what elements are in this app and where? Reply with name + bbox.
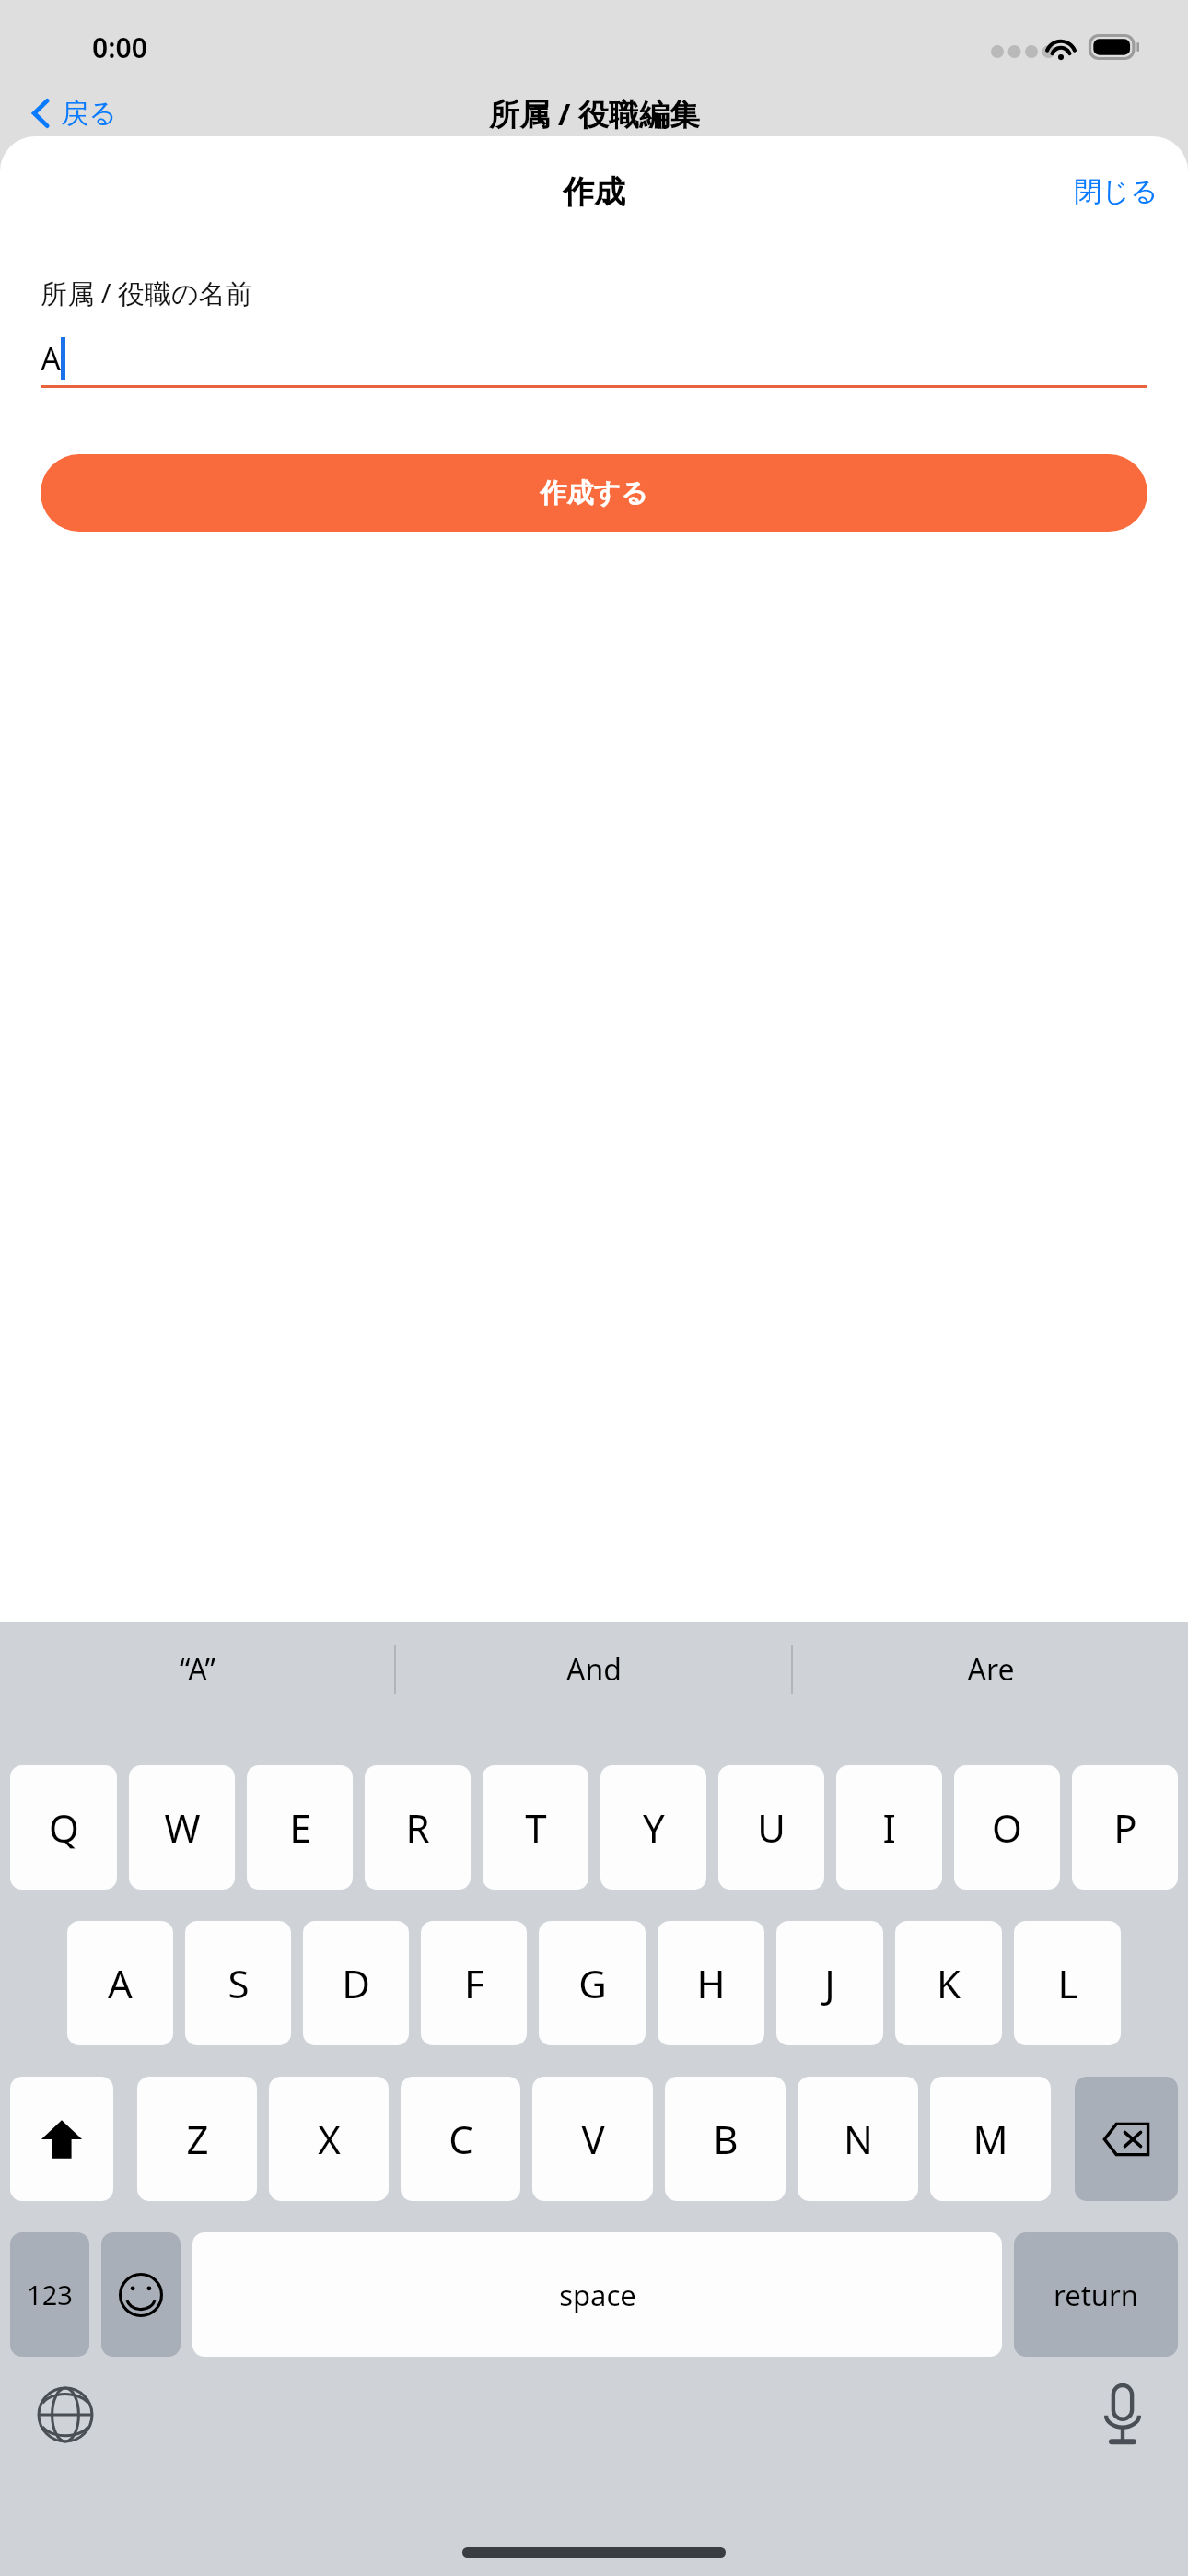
staticText: And <box>566 1649 622 1690</box>
staticText: K <box>937 1957 961 2009</box>
staticText: I <box>882 1801 896 1854</box>
button[interactable]: U <box>718 1765 824 1890</box>
staticText: 123 <box>27 2277 73 2313</box>
button[interactable]: P <box>1072 1765 1178 1890</box>
button[interactable]: C <box>401 2077 520 2201</box>
button[interactable]: I <box>836 1765 942 1890</box>
staticText: T <box>525 1801 547 1854</box>
staticText: 所属 / 役職編集 <box>489 93 700 135</box>
staticText: Q <box>49 1801 79 1854</box>
button[interactable]: Y <box>600 1765 706 1890</box>
button[interactable]: Q <box>10 1765 117 1890</box>
button[interactable]: W <box>129 1765 235 1890</box>
staticText: E <box>289 1801 311 1854</box>
button[interactable]: X <box>269 2077 389 2201</box>
staticText: 作成 <box>563 172 625 212</box>
staticText: “A” <box>180 1649 215 1690</box>
staticText: P <box>1113 1801 1137 1854</box>
button[interactable]: Are <box>793 1622 1188 1717</box>
staticText: H <box>696 1957 726 2009</box>
staticText: Y <box>643 1801 665 1854</box>
staticText: A <box>108 1957 133 2009</box>
staticText: U <box>757 1801 786 1854</box>
staticText: 所属 / 役職の名前 <box>41 275 252 311</box>
staticText: X <box>318 2113 341 2165</box>
staticText: O <box>992 1801 1022 1854</box>
button[interactable]: V <box>532 2077 653 2201</box>
staticText: A <box>41 337 61 380</box>
staticText: R <box>405 1801 430 1854</box>
button[interactable]: 戻る <box>24 90 124 136</box>
staticText: 0:00 <box>92 29 147 66</box>
button[interactable]: return <box>1014 2232 1178 2357</box>
staticText: 作成する <box>540 476 648 510</box>
button[interactable]: Shift <box>10 2077 113 2201</box>
button[interactable]: J <box>776 1921 883 2045</box>
staticText: V <box>581 2113 605 2165</box>
button[interactable]: B <box>665 2077 786 2201</box>
button[interactable]: Change keyboard <box>26 2375 105 2454</box>
button[interactable]: K <box>895 1921 1002 2045</box>
staticText: M <box>973 2113 1008 2165</box>
button[interactable]: G <box>539 1921 646 2045</box>
staticText: L <box>1057 1957 1078 2009</box>
staticText: space <box>559 2276 636 2314</box>
button[interactable]: “A” <box>0 1622 394 1717</box>
staticText: N <box>844 2113 873 2165</box>
staticText: D <box>342 1957 370 2009</box>
button[interactable]: S <box>185 1921 291 2045</box>
button[interactable]: space <box>192 2232 1002 2357</box>
button[interactable]: Dictation <box>1083 2375 1162 2454</box>
staticText: return <box>1054 2276 1138 2314</box>
button[interactable]: N <box>798 2077 918 2201</box>
staticText: Are <box>967 1649 1015 1690</box>
button[interactable]: E <box>247 1765 353 1890</box>
button[interactable]: R <box>365 1765 471 1890</box>
button[interactable]: T <box>483 1765 588 1890</box>
staticText: Z <box>186 2113 209 2165</box>
button[interactable]: Backspace <box>1075 2077 1178 2201</box>
staticText: 閉じる <box>1074 174 1159 209</box>
staticText: J <box>824 1957 835 2009</box>
button[interactable]: O <box>954 1765 1060 1890</box>
button[interactable]: L <box>1014 1921 1121 2045</box>
staticText: B <box>713 2113 739 2165</box>
staticText: F <box>464 1957 484 2009</box>
button[interactable]: Z <box>137 2077 257 2201</box>
staticText: G <box>578 1957 607 2009</box>
staticText: S <box>227 1957 250 2009</box>
button[interactable]: M <box>930 2077 1051 2201</box>
staticText: 戻る <box>61 96 117 131</box>
staticText: C <box>448 2113 473 2165</box>
button[interactable]: 123 <box>10 2232 89 2357</box>
button[interactable]: H <box>658 1921 764 2045</box>
button[interactable]: Emoji <box>101 2232 181 2357</box>
staticText: W <box>164 1801 201 1854</box>
button[interactable]: A <box>41 332 1147 385</box>
button[interactable]: 閉じる <box>1065 167 1168 217</box>
button[interactable]: A <box>67 1921 173 2045</box>
button[interactable]: F <box>421 1921 527 2045</box>
button[interactable]: And <box>396 1622 791 1717</box>
button[interactable]: D <box>303 1921 409 2045</box>
button[interactable]: 作成する <box>41 454 1147 532</box>
